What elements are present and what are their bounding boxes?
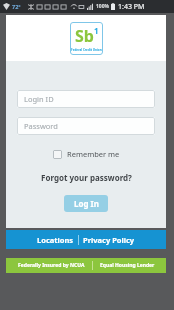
staticText: Federal Credit Union bbox=[71, 48, 102, 52]
button[interactable]: Remember me bbox=[49, 147, 124, 161]
button[interactable]: Privacy Policy bbox=[79, 232, 139, 248]
staticText: Sb bbox=[75, 25, 94, 47]
staticText: 100% bbox=[96, 3, 110, 10]
staticText: 72° bbox=[12, 3, 21, 10]
button[interactable]: Password bbox=[17, 117, 155, 135]
staticText: Equal Housing Lender bbox=[100, 262, 155, 269]
staticText: Federally Insured by NCUA bbox=[18, 262, 85, 269]
staticText: Log In bbox=[74, 198, 99, 209]
staticText: Login ID bbox=[24, 94, 54, 104]
button[interactable]: Login ID bbox=[17, 90, 155, 108]
button[interactable]: Forgot your password? bbox=[35, 169, 138, 186]
staticText: Password bbox=[24, 121, 58, 131]
button[interactable]: Locations bbox=[33, 232, 78, 248]
staticText: 1 bbox=[94, 25, 99, 36]
staticText: 1:43 PM bbox=[118, 2, 145, 12]
staticText: Remember me bbox=[67, 149, 120, 159]
button[interactable]: Log In bbox=[64, 195, 108, 212]
